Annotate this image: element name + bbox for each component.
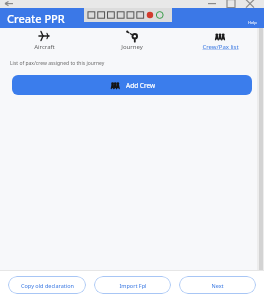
button[interactable]: Crew [176,30,264,54]
button[interactable]: Add Crew [12,75,252,95]
staticText: Journey [121,43,143,51]
staticText: Aircraft [34,43,55,51]
staticText: Crew/Pax list [202,43,239,51]
staticText: Add Crew [126,81,156,90]
staticText: List of pax/crew assigned to this journe… [10,60,105,67]
other: Journey [125,30,139,42]
button[interactable]: Help [248,20,257,25]
staticText: Copy old declaration [21,282,74,289]
button[interactable]: Next [179,276,256,294]
staticText: Import Fpl [119,282,147,289]
button[interactable]: Copy old declaration [8,276,86,294]
button[interactable]: Import Fpl [94,276,171,294]
other: Crew [212,31,228,41]
staticText: Create PPR [7,11,65,26]
button[interactable]: Journey [88,30,176,54]
other: Aircraft [37,31,51,41]
staticText: Next [211,282,224,289]
button[interactable]: Aircraft [0,30,88,54]
